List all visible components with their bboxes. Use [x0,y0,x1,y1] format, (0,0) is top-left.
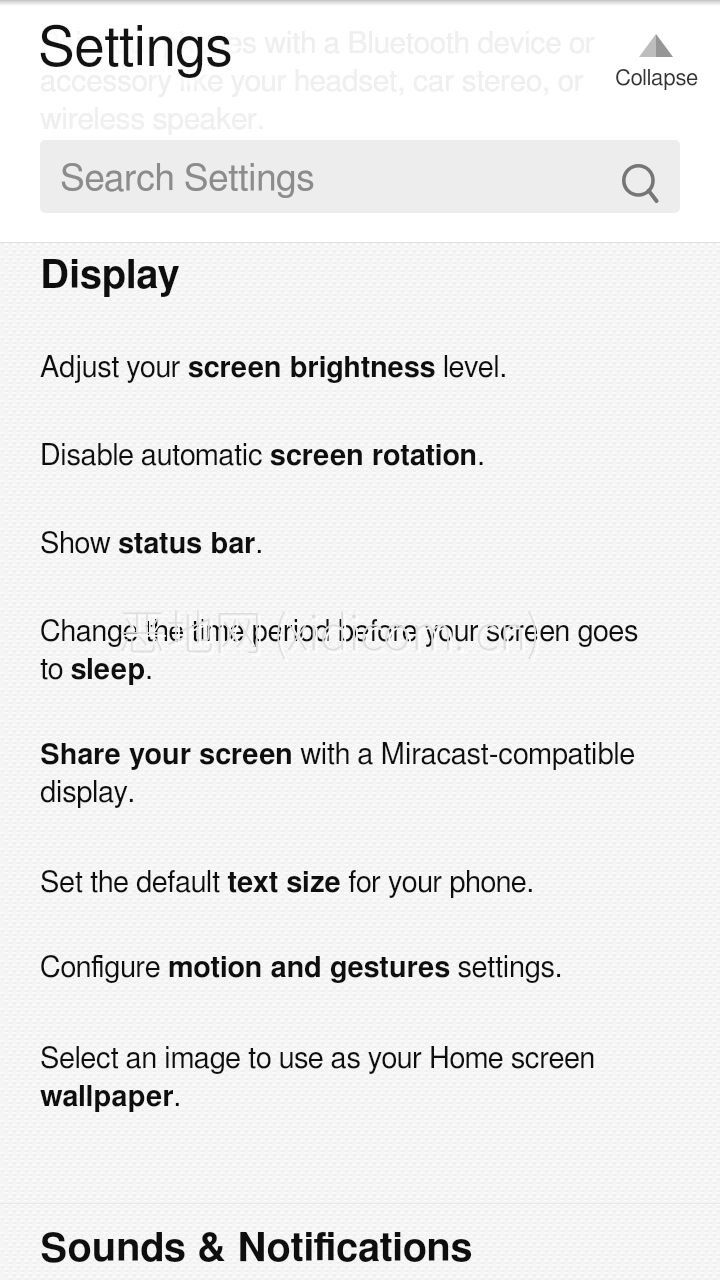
staticText: Settings [46,22,241,77]
staticText: Settings [46,14,241,69]
staticText: Settings [46,26,241,81]
staticText: Adjust your screen brightness level. [40,354,654,383]
staticText: Settings [43,30,238,85]
staticText: Settings [46,30,241,85]
staticText: 恶地网 (xidicom. cn) [118,594,541,664]
staticText: accessory like your headset, car stereo,… [40,67,584,97]
staticText: Configure motion and gestures settings. [40,954,654,983]
staticText: Change the time period before your scree… [40,618,654,685]
staticText: Show status bar. [40,530,654,559]
staticText: Settings [30,22,225,77]
staticText: Share your screen with a Miracast-compat… [40,741,654,808]
staticText: Pair your phones with a Bluetooth device… [40,29,595,59]
staticText: Settings [43,14,238,69]
staticText: Settings [46,18,241,73]
staticText: Settings [40,22,235,77]
staticText: Settings [33,26,228,81]
button[interactable]: Search Settings [40,140,680,213]
staticText: Settings [36,18,231,73]
button[interactable]: Share your screen with a Miracast-compat… [40,741,654,808]
staticText: Settings [33,22,228,77]
button[interactable]: Configure motion and gestures settings. [40,954,654,983]
button[interactable]: Adjust your screen brightness level. [40,354,654,383]
staticText: Disable automatic screen rotation. [40,442,654,471]
staticText: Settings [43,22,238,77]
staticText: Settings [30,18,225,73]
staticText: Settings [30,30,225,85]
staticText: Settings [40,26,235,81]
staticText: Settings [33,30,228,85]
staticText: Settings [36,26,231,81]
staticText: Settings [40,30,235,85]
staticText: Collapse [615,67,698,89]
staticText: Sounds & Notifications [40,1229,473,1269]
button[interactable]: Show status bar. [40,530,654,559]
staticText: Settings [43,18,238,73]
staticText: 恶地网 (xidicom. cn) [121,597,544,667]
staticText: Search Settings [60,160,315,197]
staticText: Display [40,256,180,296]
staticText: Set the default text size for your phone… [40,869,654,898]
staticText: Settings [30,14,225,69]
staticText: wireless speaker. [40,105,265,135]
staticText: Settings [33,14,228,69]
staticText: Settings [40,18,235,73]
staticText: Settings [30,26,225,81]
button[interactable]: Disable automatic screen rotation. [40,442,654,471]
staticText: Settings [38,22,233,77]
staticText: Settings [40,14,235,69]
staticText: Select an image to use as your Home scre… [40,1045,654,1112]
button[interactable]: Set the default text size for your phone… [40,869,654,898]
button[interactable]: Select an image to use as your Home scre… [40,1045,654,1112]
staticText: Settings [36,22,231,77]
button[interactable]: Collapse [612,34,700,89]
staticText: Settings [36,14,231,69]
staticText: Settings [33,18,228,73]
button[interactable]: Change the time period before your scree… [40,618,654,685]
staticText: Settings [36,30,231,85]
staticText: Settings [43,26,238,81]
